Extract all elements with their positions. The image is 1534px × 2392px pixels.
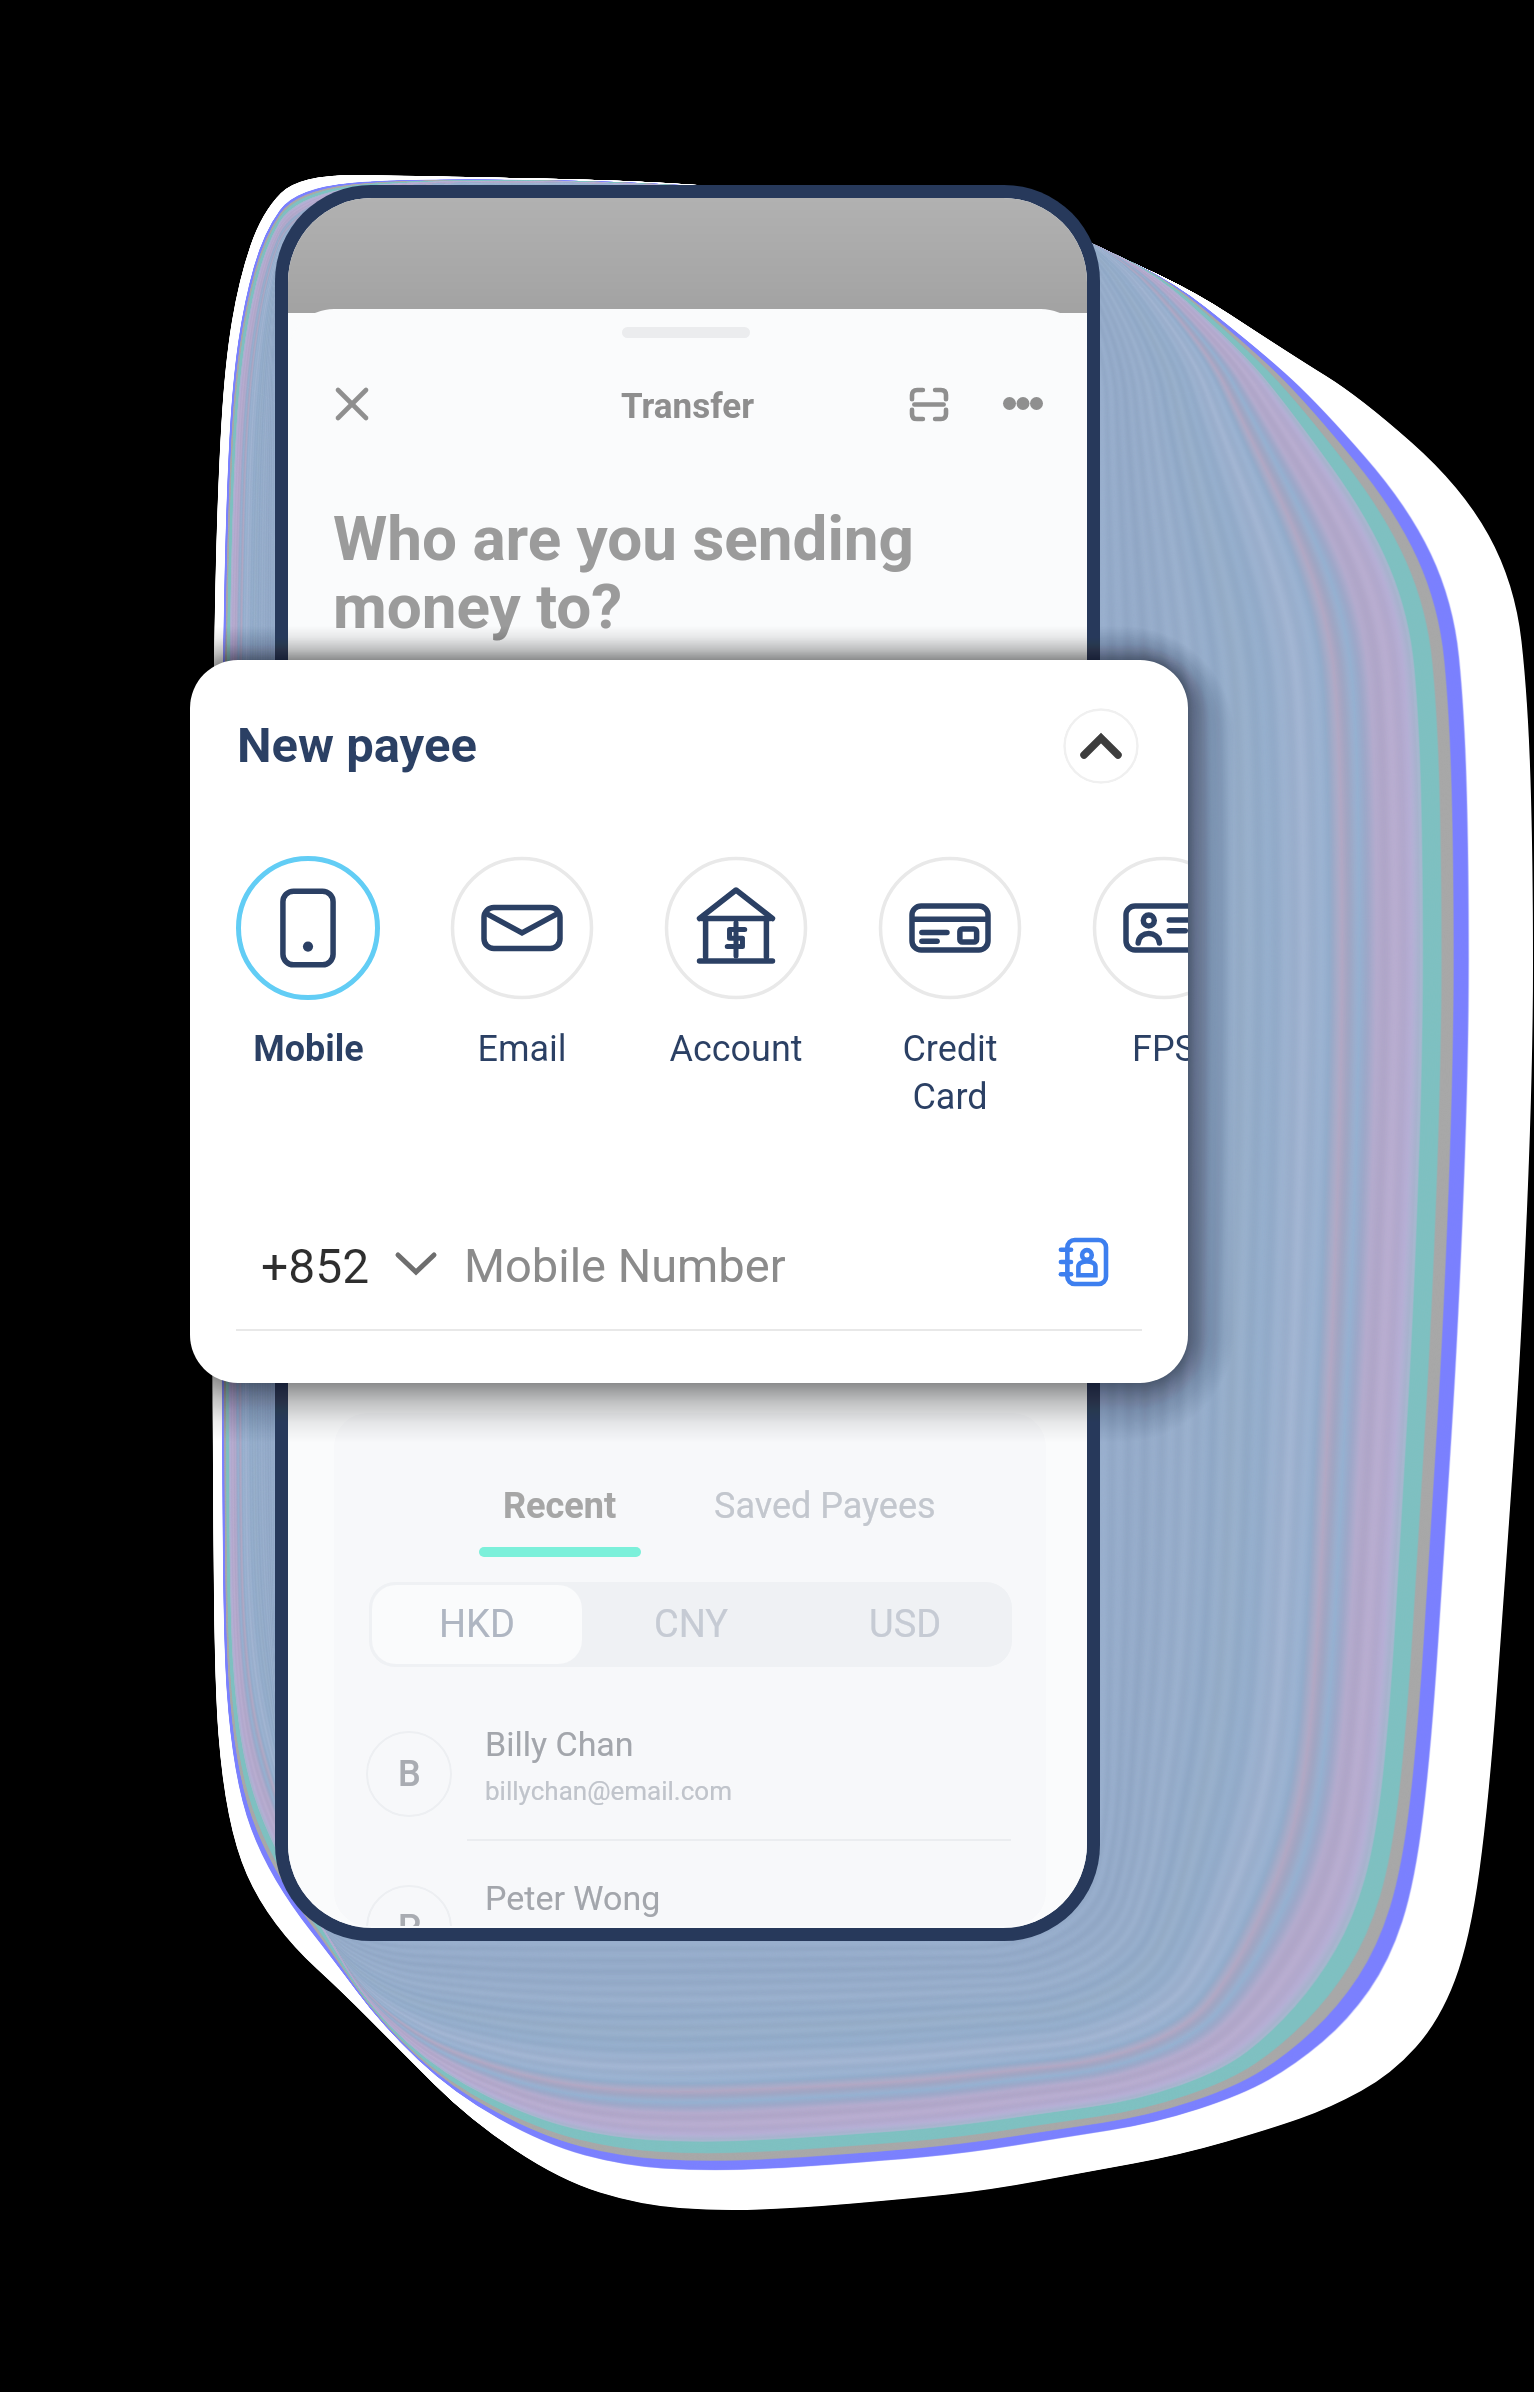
- button[interactable]: Choose from contacts: [1045, 1224, 1121, 1300]
- staticText: Mobile: [253, 1028, 364, 1070]
- staticText: B: [398, 1753, 421, 1795]
- staticText: HKD: [439, 1602, 515, 1647]
- button[interactable]: P: [334, 1870, 1046, 1926]
- button[interactable]: CNY: [584, 1582, 798, 1667]
- staticText: Who are you sending money to?: [333, 502, 915, 643]
- button[interactable]: Scan QR code: [895, 370, 963, 438]
- staticText: Transfer: [288, 386, 1087, 427]
- button[interactable]: Recent: [473, 1465, 695, 1565]
- staticText: Mobile Number: [464, 1238, 786, 1293]
- button[interactable]: Credit Card: [850, 856, 1050, 1118]
- staticText: Recent: [503, 1485, 617, 1527]
- button[interactable]: Close: [318, 370, 386, 438]
- staticText: billychan@email.com: [485, 1776, 732, 1806]
- staticText: New payee: [237, 717, 477, 774]
- button[interactable]: Country code: [388, 1236, 444, 1292]
- button[interactable]: More options: [989, 369, 1057, 437]
- button[interactable]: USD: [798, 1582, 1012, 1667]
- staticText: Email: [477, 1028, 567, 1070]
- staticText: CNY: [654, 1602, 729, 1647]
- button[interactable]: Mobile: [208, 856, 408, 1070]
- staticText: FPS: [1132, 1028, 1188, 1070]
- staticText: Peter Wong: [485, 1878, 661, 1918]
- button[interactable]: Saved Payees: [694, 1465, 954, 1535]
- button[interactable]: FPS: [1064, 856, 1188, 1070]
- button[interactable]: Email: [422, 856, 622, 1070]
- staticText: Saved Payees: [714, 1485, 936, 1527]
- staticText: Credit Card: [902, 1028, 998, 1118]
- button[interactable]: B: [334, 1716, 1046, 1856]
- button[interactable]: Collapse: [1063, 708, 1139, 784]
- staticText: +852: [261, 1238, 370, 1294]
- button[interactable]: HKD: [369, 1582, 584, 1667]
- staticText: P: [398, 1907, 421, 1926]
- staticText: USD: [869, 1602, 942, 1647]
- staticText: Account: [669, 1028, 803, 1070]
- button[interactable]: Account: [636, 856, 836, 1070]
- staticText: Billy Chan: [485, 1724, 634, 1764]
